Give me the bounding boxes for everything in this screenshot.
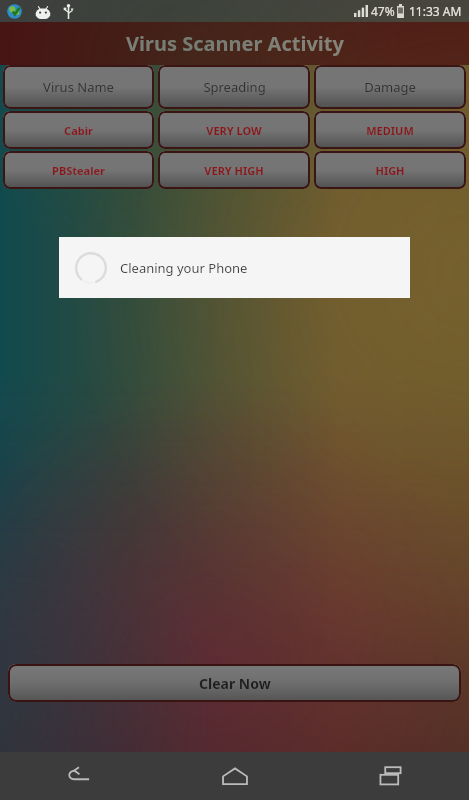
staticText: Clear Now [199, 674, 271, 693]
button[interactable]: PBStealer [3, 151, 154, 189]
staticText: 11:33 AM [409, 3, 462, 19]
staticText: Damage [364, 78, 416, 96]
button[interactable]: Cabir [3, 111, 154, 149]
staticText: Spreading [203, 78, 266, 96]
staticText: VERY LOW [206, 123, 262, 138]
button[interactable]: MEDIUM [314, 111, 466, 149]
staticText: PBStealer [52, 163, 105, 178]
staticText: HIGH [375, 163, 405, 178]
staticText: Virus Name [43, 78, 114, 96]
staticText: MEDIUM [366, 123, 414, 138]
button[interactable]: Back [0, 752, 157, 800]
button[interactable]: VERY LOW [158, 111, 310, 149]
button[interactable]: Clear Now [8, 664, 461, 702]
staticText: VERY HIGH [204, 163, 264, 178]
button[interactable]: Home [157, 752, 313, 800]
staticText: Cabir [64, 123, 93, 138]
button[interactable]: Spreading [158, 65, 310, 109]
staticText: Virus Scanner Activity [126, 30, 344, 57]
button[interactable]: Damage [314, 65, 466, 109]
button[interactable]: HIGH [314, 151, 466, 189]
button[interactable]: Virus Name [3, 65, 154, 109]
staticText: Cleaning your Phone [120, 259, 248, 277]
staticText: 47% [371, 3, 395, 19]
button[interactable]: Recent apps [313, 752, 469, 800]
button[interactable]: VERY HIGH [158, 151, 310, 189]
